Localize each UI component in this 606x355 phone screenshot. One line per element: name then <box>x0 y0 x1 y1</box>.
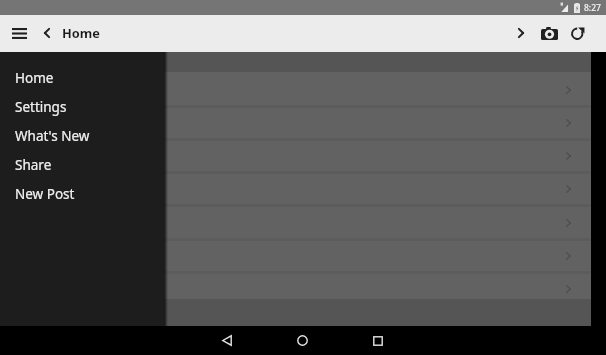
staticText: 8:27 <box>584 2 601 14</box>
button[interactable]: Back <box>32 18 62 48</box>
button[interactable] <box>0 172 591 205</box>
button[interactable] <box>0 206 591 239</box>
button[interactable]: Refresh <box>562 18 592 48</box>
button[interactable] <box>0 272 591 305</box>
staticText: Settings <box>15 98 67 116</box>
staticText: New Post <box>15 185 75 203</box>
button[interactable] <box>0 106 591 139</box>
button[interactable] <box>0 239 591 272</box>
button[interactable]: Home <box>277 326 327 355</box>
button[interactable]: New Post <box>0 179 164 208</box>
button[interactable] <box>0 139 591 172</box>
staticText: Share <box>15 156 52 174</box>
button[interactable]: Back <box>202 326 252 355</box>
button[interactable]: Recent apps <box>353 326 403 355</box>
button[interactable]: Home <box>0 63 164 92</box>
button[interactable]: What's New <box>0 121 164 150</box>
staticText: Home <box>15 69 54 87</box>
staticText: What's New <box>15 127 90 145</box>
button[interactable]: Share <box>0 150 164 179</box>
button[interactable]: Settings <box>0 92 164 121</box>
button[interactable]: Forward <box>506 18 536 48</box>
button[interactable] <box>0 73 591 106</box>
button[interactable]: Open navigation drawer <box>4 18 34 48</box>
staticText: Home <box>62 24 100 41</box>
button[interactable]: Camera <box>534 18 564 48</box>
